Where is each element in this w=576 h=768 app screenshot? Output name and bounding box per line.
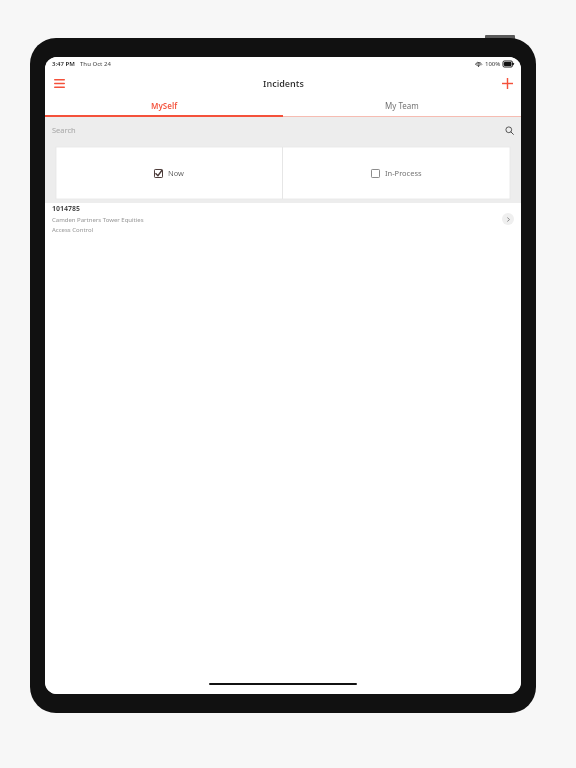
staticText: Access Control xyxy=(52,226,94,234)
staticText: Thu Oct 24 xyxy=(80,60,111,68)
staticText: Incidents xyxy=(263,77,304,89)
button[interactable]: Add incident xyxy=(497,73,517,93)
button[interactable]: My Team xyxy=(283,95,521,115)
button[interactable]: Search xyxy=(45,117,521,143)
button[interactable]: In-Process xyxy=(283,147,510,199)
staticText: 1014785 xyxy=(52,204,81,214)
staticText: MySelf xyxy=(151,100,178,111)
staticText: Now xyxy=(168,168,184,178)
button[interactable]: 1014785 xyxy=(45,203,521,235)
button[interactable]: Now xyxy=(56,147,282,199)
button[interactable]: Open incident 1014785 xyxy=(502,213,514,225)
staticText: 3:47 PM xyxy=(52,60,75,68)
button[interactable]: MySelf xyxy=(45,95,283,115)
staticText: My Team xyxy=(385,100,419,111)
staticText: Camden Partners Tower Equities xyxy=(52,216,144,224)
staticText: Search xyxy=(52,125,76,135)
staticText: 100% xyxy=(485,60,501,68)
button[interactable]: Menu xyxy=(49,73,69,93)
staticText: In-Process xyxy=(385,168,422,178)
